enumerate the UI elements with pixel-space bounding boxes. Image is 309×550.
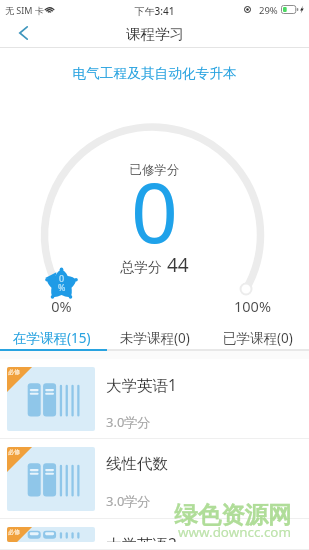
staticText: 0% — [45, 296, 78, 316]
staticText: 总学分 — [120, 259, 162, 277]
staticText: 无 SIM 卡 — [5, 4, 44, 16]
staticText: 大学英语1 — [106, 374, 177, 395]
staticText: 必修 — [8, 528, 20, 536]
staticText: 29% — [259, 4, 278, 17]
staticText: 大学英语2 — [106, 533, 177, 542]
staticText: 课程学习 — [126, 25, 184, 43]
button[interactable]: 已学课程(0) — [206, 326, 309, 349]
staticText: 100% — [224, 296, 281, 316]
staticText: 已修学分 — [0, 162, 309, 178]
staticText: % — [58, 281, 66, 293]
staticText: 0 — [59, 272, 65, 284]
staticText: 绿色资源网 — [174, 500, 292, 530]
staticText: 0 — [0, 155, 309, 267]
button[interactable]: 必修 — [0, 439, 309, 519]
staticText: 44 — [167, 252, 189, 278]
button[interactable]: Back — [0, 20, 44, 48]
button[interactable]: 未学课程(0) — [103, 326, 206, 349]
staticText: 必修 — [8, 448, 20, 456]
button[interactable]: 必修 — [0, 359, 309, 439]
staticText: 未学课程(0) — [120, 329, 190, 347]
staticText: 在学课程(15) — [13, 329, 91, 347]
staticText: www.downcc.com — [178, 523, 291, 541]
staticText: 已学课程(0) — [223, 329, 293, 347]
button[interactable]: 必修 — [0, 519, 309, 550]
staticText: 3.0学分 — [106, 492, 151, 510]
staticText: 3.0学分 — [106, 413, 151, 431]
staticText: 电气工程及其自动化专升本 — [0, 65, 309, 82]
button[interactable]: 在学课程(15) — [0, 326, 103, 349]
staticText: 必修 — [8, 368, 20, 376]
staticText: 线性代数 — [106, 454, 168, 474]
staticText: 下午3:41 — [0, 4, 309, 18]
